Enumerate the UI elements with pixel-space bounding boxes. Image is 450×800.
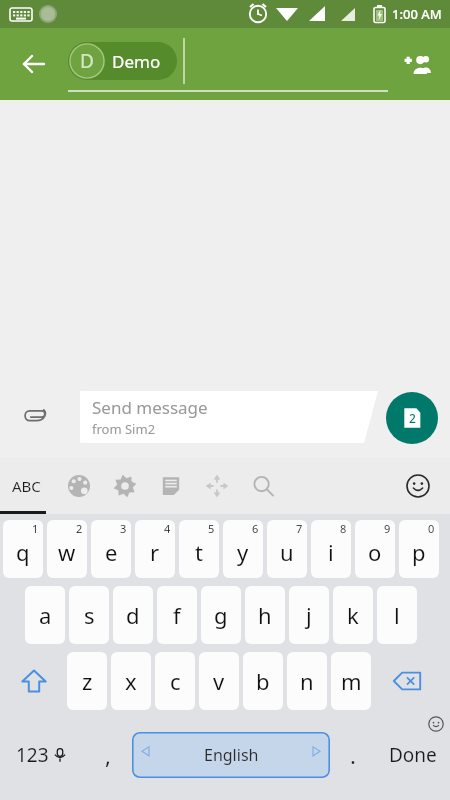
staticText: D bbox=[80, 48, 94, 74]
button[interactable]: Send message bbox=[80, 391, 378, 443]
button[interactable]: Resize bbox=[194, 463, 240, 509]
staticText: , bbox=[105, 740, 111, 770]
staticText: a bbox=[39, 600, 52, 630]
staticText: 2 bbox=[409, 410, 416, 426]
button[interactable]: 8 bbox=[311, 520, 351, 578]
button[interactable]: d bbox=[113, 586, 153, 644]
button[interactable]: j bbox=[289, 586, 329, 644]
staticText: s bbox=[84, 600, 95, 630]
button[interactable]: l bbox=[377, 586, 417, 644]
button[interactable]: Done bbox=[376, 710, 450, 800]
staticText: Done bbox=[389, 742, 437, 768]
staticText: 2 bbox=[76, 521, 83, 536]
staticText: 6 bbox=[252, 521, 259, 536]
button[interactable]: 0 bbox=[399, 520, 439, 578]
staticText: g bbox=[214, 600, 228, 630]
staticText: p bbox=[412, 537, 426, 567]
staticText: m bbox=[341, 666, 362, 696]
button[interactable]: a bbox=[25, 586, 65, 644]
button[interactable]: 3 bbox=[91, 520, 131, 578]
staticText: y bbox=[237, 537, 249, 567]
button[interactable]: 4 bbox=[135, 520, 175, 578]
staticText: k bbox=[347, 600, 359, 630]
staticText: from Sim2 bbox=[92, 420, 156, 438]
staticText: d bbox=[126, 600, 140, 630]
staticText: j bbox=[306, 600, 312, 630]
button[interactable]: , bbox=[84, 710, 132, 800]
button[interactable]: h bbox=[245, 586, 285, 644]
button[interactable]: . bbox=[330, 710, 376, 800]
staticText: ABC bbox=[12, 476, 41, 496]
button[interactable]: 6 bbox=[223, 520, 263, 578]
staticText: 8 bbox=[340, 521, 347, 536]
staticText: x bbox=[125, 666, 137, 696]
staticText: n bbox=[300, 666, 314, 696]
button[interactable]: Emoji bbox=[398, 466, 438, 506]
staticText: i bbox=[328, 537, 334, 567]
button[interactable]: Search bbox=[240, 463, 286, 509]
staticText: f bbox=[173, 600, 181, 630]
staticText: w bbox=[58, 537, 76, 567]
staticText: o bbox=[368, 537, 382, 567]
staticText: r bbox=[150, 537, 160, 567]
button[interactable]: D bbox=[68, 42, 177, 80]
button[interactable]: Attach bbox=[14, 393, 58, 437]
staticText: e bbox=[105, 537, 118, 567]
button[interactable]: Send from Sim2 bbox=[386, 392, 438, 444]
staticText: English bbox=[204, 744, 259, 766]
button[interactable]: 123 bbox=[0, 710, 84, 800]
staticText: 0 bbox=[428, 521, 435, 536]
staticText: b bbox=[256, 666, 270, 696]
staticText: v bbox=[213, 666, 225, 696]
button[interactable]: n bbox=[287, 652, 327, 710]
button[interactable]: Back bbox=[12, 42, 56, 86]
button[interactable]: 2 bbox=[47, 520, 87, 578]
staticText: 1:00 AM bbox=[392, 5, 442, 23]
button[interactable]: c bbox=[155, 652, 195, 710]
staticText: Send message bbox=[92, 396, 208, 419]
staticText: z bbox=[82, 666, 93, 696]
staticText: l bbox=[394, 600, 400, 630]
button[interactable]: Settings bbox=[102, 463, 148, 509]
staticText: 3 bbox=[120, 521, 127, 536]
staticText: 7 bbox=[296, 521, 303, 536]
staticText: Demo bbox=[112, 50, 161, 73]
button[interactable]: Shift bbox=[0, 652, 67, 710]
button[interactable]: f bbox=[157, 586, 197, 644]
button[interactable]: x bbox=[111, 652, 151, 710]
button[interactable]: 9 bbox=[355, 520, 395, 578]
button[interactable]: s bbox=[69, 586, 109, 644]
button[interactable]: 1 bbox=[3, 520, 43, 578]
button[interactable]: Clipboard bbox=[148, 463, 194, 509]
button[interactable]: Backspace bbox=[375, 652, 438, 710]
button[interactable]: g bbox=[201, 586, 241, 644]
staticText: h bbox=[258, 600, 272, 630]
button[interactable]: English bbox=[132, 732, 330, 778]
staticText: q bbox=[16, 537, 30, 567]
button[interactable]: Theme bbox=[56, 463, 102, 509]
staticText: 9 bbox=[384, 521, 391, 536]
staticText: 4 bbox=[164, 521, 171, 536]
button[interactable]: k bbox=[333, 586, 373, 644]
button[interactable]: m bbox=[331, 652, 371, 710]
staticText: t bbox=[195, 537, 203, 567]
staticText: c bbox=[170, 666, 181, 696]
button[interactable]: 7 bbox=[267, 520, 307, 578]
button[interactable]: Add people bbox=[394, 40, 442, 88]
button[interactable]: ABC bbox=[6, 458, 46, 514]
staticText: 1 bbox=[32, 521, 39, 536]
staticText: 5 bbox=[208, 521, 215, 536]
staticText: . bbox=[350, 740, 356, 770]
button[interactable]: z bbox=[67, 652, 107, 710]
staticText: 123 bbox=[16, 742, 49, 768]
button[interactable]: v bbox=[199, 652, 239, 710]
button[interactable]: b bbox=[243, 652, 283, 710]
button[interactable]: 5 bbox=[179, 520, 219, 578]
staticText: u bbox=[280, 537, 294, 567]
